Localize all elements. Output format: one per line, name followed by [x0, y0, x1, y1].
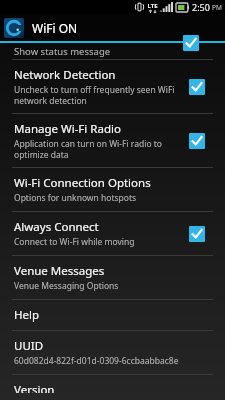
button[interactable]: Manage Wi-Fi Radio [0, 114, 225, 167]
other: App icon [4, 18, 24, 38]
button[interactable]: Checked [189, 79, 205, 95]
staticText: Manage Wi-Fi Radio [14, 121, 121, 137]
button[interactable]: UUID [0, 331, 225, 374]
button[interactable]: Checked [189, 133, 205, 149]
button[interactable]: Checked [183, 35, 199, 51]
staticText: Venue Messaging Options [14, 280, 119, 292]
staticText: Connect to Wi-Fi while moving [14, 236, 135, 248]
button[interactable]: Help [0, 300, 225, 330]
button[interactable]: Version [0, 375, 225, 400]
staticText: Network Detection [14, 67, 116, 83]
button[interactable]: Show status message [0, 43, 225, 59]
button[interactable]: Checked [189, 226, 205, 242]
button[interactable]: Wi-Fi Connection Options [0, 168, 225, 211]
staticText: Venue Messages [14, 263, 105, 279]
staticText: 60d082d4-822f-d01d-0309-6ccbaabbac8e [14, 355, 179, 367]
staticText: Version [14, 382, 55, 393]
staticText: Wi-Fi Connection Options [14, 175, 151, 191]
staticText: LTE [147, 2, 158, 10]
staticText: Options for unknown hotspots [14, 192, 137, 204]
staticText: Uncheck to turn off frequently seen WiFi… [14, 84, 183, 106]
button[interactable]: Venue Messages [0, 256, 225, 299]
staticText: 2:50 [192, 1, 210, 13]
button[interactable]: Always Connect [0, 212, 225, 255]
staticText: UUID [14, 338, 44, 354]
staticText: WiFi ON [32, 20, 78, 36]
staticText: Always Connect [14, 219, 99, 235]
staticText: Help [14, 307, 40, 323]
staticText: PM [212, 3, 222, 12]
staticText: Show status message [14, 45, 111, 58]
staticText: Application can turn on Wi-Fi radio to o… [14, 138, 183, 160]
button[interactable]: Network Detection [0, 60, 225, 113]
